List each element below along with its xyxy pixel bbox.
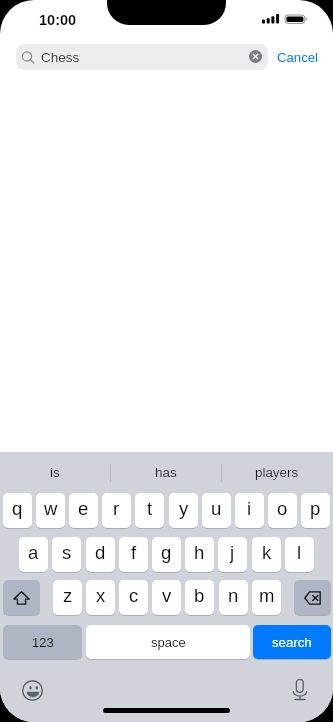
button[interactable]: a — [19, 537, 48, 572]
button[interactable]: Shift — [3, 580, 40, 615]
staticText: e — [78, 498, 89, 519]
button[interactable]: y — [169, 493, 198, 528]
staticText: players — [255, 465, 299, 480]
button[interactable]: h — [185, 537, 214, 572]
button[interactable]: 123 — [3, 625, 82, 659]
staticText: x — [96, 585, 106, 606]
staticText: g — [161, 542, 172, 563]
button[interactable]: Backspace — [294, 580, 331, 615]
staticText: 10:00 — [39, 12, 77, 28]
staticText: i — [247, 498, 252, 519]
staticText: search — [272, 635, 312, 650]
staticText: z — [63, 585, 73, 606]
button[interactable]: v — [152, 580, 181, 615]
button[interactable]: j — [218, 537, 247, 572]
staticText: h — [194, 542, 205, 563]
staticText: r — [113, 498, 120, 519]
button[interactable]: x — [86, 580, 115, 615]
staticText: n — [228, 585, 239, 606]
button[interactable]: players — [222, 452, 332, 493]
button[interactable]: l — [285, 537, 314, 572]
button[interactable]: Cancel — [277, 44, 321, 70]
button[interactable]: u — [202, 493, 231, 528]
button[interactable]: z — [53, 580, 82, 615]
staticText: b — [194, 585, 205, 606]
button[interactable]: d — [86, 537, 115, 572]
staticText: Chess — [41, 50, 80, 65]
staticText: k — [262, 542, 272, 563]
staticText: p — [310, 498, 321, 519]
staticText: has — [155, 465, 177, 480]
staticText: q — [12, 498, 23, 519]
staticText: t — [147, 498, 153, 519]
button[interactable]: c — [119, 580, 148, 615]
staticText: w — [44, 498, 58, 519]
button[interactable]: m — [252, 580, 281, 615]
staticText: y — [179, 498, 189, 519]
button[interactable]: w — [36, 493, 65, 528]
button[interactable]: Dictation — [293, 679, 307, 701]
button[interactable]: q — [3, 493, 32, 528]
button[interactable]: f — [119, 537, 148, 572]
button[interactable]: has — [111, 452, 221, 493]
button[interactable]: k — [252, 537, 281, 572]
button[interactable]: e — [69, 493, 98, 528]
button[interactable]: r — [102, 493, 131, 528]
staticText: a — [28, 542, 39, 563]
staticText: d — [95, 542, 106, 563]
button[interactable]: n — [219, 580, 248, 615]
button[interactable]: space — [86, 625, 250, 659]
staticText: l — [297, 542, 302, 563]
staticText: is — [50, 465, 60, 480]
button[interactable]: Clear text — [249, 50, 262, 63]
button[interactable]: i — [235, 493, 264, 528]
staticText: s — [62, 542, 72, 563]
staticText: u — [211, 498, 222, 519]
staticText: space — [151, 635, 186, 650]
button[interactable]: s — [52, 537, 81, 572]
staticText: 123 — [32, 635, 54, 650]
staticText: f — [131, 542, 137, 563]
button[interactable]: g — [152, 537, 181, 572]
button[interactable]: Emoji keyboard — [22, 680, 43, 701]
staticText: o — [277, 498, 288, 519]
button[interactable]: t — [135, 493, 164, 528]
staticText: v — [162, 585, 172, 606]
button[interactable]: b — [185, 580, 214, 615]
button[interactable]: p — [301, 493, 330, 528]
button[interactable]: o — [268, 493, 297, 528]
staticText: c — [129, 585, 139, 606]
staticText: Cancel — [277, 50, 319, 65]
staticText: m — [259, 585, 275, 606]
button[interactable]: is — [0, 452, 110, 493]
button[interactable]: Chess — [16, 44, 268, 70]
button[interactable]: search — [253, 625, 331, 659]
staticText: j — [230, 542, 235, 563]
